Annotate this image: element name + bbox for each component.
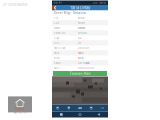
staticText: Ad Soyad (78, 61, 90, 65)
button[interactable]: Recents (52, 111, 71, 117)
button[interactable]: Back (52, 5, 58, 10)
staticText: 5.2 (78, 36, 82, 40)
staticText: Alan (54, 36, 59, 40)
staticText: 2024-01-01 (78, 66, 94, 70)
button[interactable]: More (97, 104, 108, 111)
staticText: Tarih (54, 66, 59, 70)
button[interactable]: Layers (52, 104, 63, 111)
staticText: A1 (78, 41, 81, 45)
staticText: Tip (54, 16, 59, 20)
button[interactable]: Home (71, 111, 89, 117)
staticText: Tarla (78, 51, 83, 55)
staticText: Parsel No (54, 31, 66, 35)
button[interactable]: Map type (86, 104, 97, 111)
staticText: brand (15, 107, 24, 111)
staticText: Kod (54, 41, 60, 45)
staticText: Genel Bilgi (54, 11, 71, 15)
staticText: Ada (54, 21, 59, 25)
staticText: Sahibi (54, 61, 62, 65)
staticText: Tarla (54, 51, 59, 55)
staticText: 09:41 (53, 1, 61, 4)
staticText: Taranan Alan (69, 72, 90, 75)
staticText: tagline goes here (12, 111, 27, 114)
staticText: Bitki (54, 56, 60, 60)
staticText: Blok (78, 16, 84, 20)
button[interactable]: Measure (74, 104, 86, 111)
staticText: 10101 (78, 21, 85, 25)
button[interactable]: Detaylar (73, 11, 86, 15)
staticText: LTE 96% (92, 1, 106, 4)
staticText: Merkez (78, 26, 85, 30)
staticText: Misir (78, 56, 84, 60)
button[interactable]: Taranan Alan (53, 71, 107, 76)
button[interactable]: Location (63, 104, 74, 111)
staticText: BY HIDDENNAME (3, 3, 28, 7)
button[interactable]: Genel Bilgi (54, 11, 71, 15)
button[interactable]: Back (89, 111, 108, 117)
staticText: Tapu Alani (54, 46, 66, 50)
staticText: Mevkii (54, 26, 61, 30)
staticText: 12500 (78, 31, 87, 35)
staticText: Tarla Detay (70, 5, 90, 10)
staticText: Detaylar (73, 11, 86, 15)
staticText: 2021-01 (78, 46, 89, 50)
